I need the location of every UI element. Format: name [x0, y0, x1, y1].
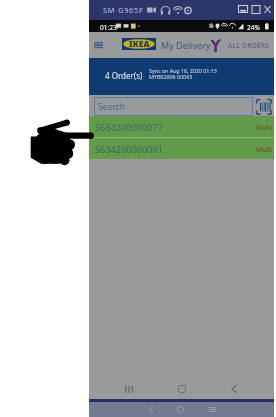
button[interactable]: Back — [224, 379, 244, 399]
button[interactable]: Home — [173, 402, 187, 416]
staticText: 24% — [247, 23, 260, 32]
staticText: Sync on Aug 16, 2020 01:13 — [149, 67, 217, 74]
staticText: 01:23 — [100, 23, 117, 32]
staticText: IKEA — [129, 38, 150, 50]
button[interactable]: S634200000077 — [89, 116, 274, 137]
button[interactable]: Open navigation menu — [90, 35, 106, 55]
button[interactable]: Search — [94, 97, 253, 116]
button[interactable]: Home — [172, 379, 192, 399]
staticText: S634200000081 — [95, 143, 164, 156]
staticText: MYBK2006 00043 — [149, 73, 193, 80]
staticText: 4 Order(s) — [105, 70, 143, 81]
button[interactable]: S634200000081 — [89, 138, 274, 159]
staticText: ALL ORDERS — [228, 41, 270, 50]
staticText: Multi — [256, 145, 273, 154]
staticText: Search — [98, 101, 125, 113]
staticText: S634200000077 — [95, 121, 164, 134]
button[interactable]: Scan barcode — [256, 99, 272, 115]
staticText: SM G965F — [103, 5, 144, 15]
button[interactable]: ALL ORDERS — [210, 33, 270, 57]
button[interactable]: Menu — [205, 402, 219, 416]
staticText: My Delivery — [161, 39, 211, 51]
button[interactable]: Recent apps — [119, 379, 139, 399]
staticText: Multi — [256, 123, 273, 132]
button[interactable]: Back — [144, 402, 158, 416]
